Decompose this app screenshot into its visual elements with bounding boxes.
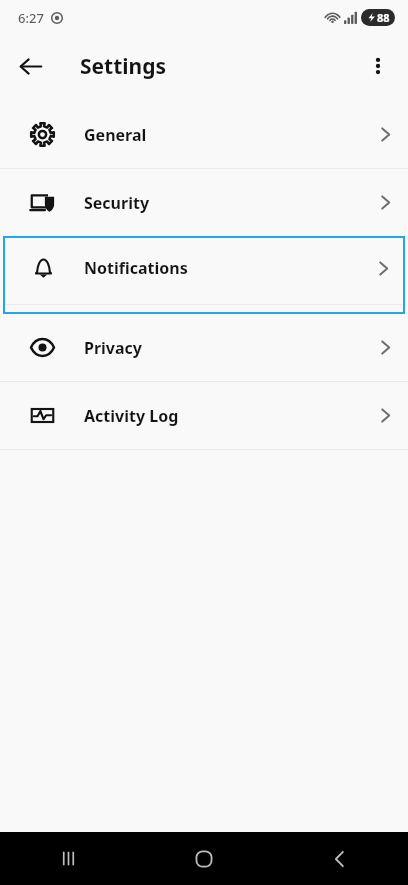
button[interactable]: Back [9,45,51,87]
button[interactable]: Privacy [0,314,408,381]
button[interactable]: Recent apps [23,832,113,885]
button[interactable]: Home [159,832,249,885]
staticText: General [84,124,147,146]
staticText: Notifications [84,257,188,279]
staticText: Activity Log [84,405,179,427]
button[interactable]: Notifications [3,236,405,314]
button[interactable]: Back [295,832,385,885]
staticText: Settings [80,52,167,81]
button[interactable]: General [0,101,408,168]
button[interactable]: More options [358,46,398,86]
button[interactable]: Security [0,169,408,236]
staticText: Privacy [84,337,142,359]
staticText: Security [84,192,150,214]
button[interactable]: Activity Log [0,382,408,449]
staticText: 6:27 [18,9,44,27]
staticText: 88 [377,10,390,25]
